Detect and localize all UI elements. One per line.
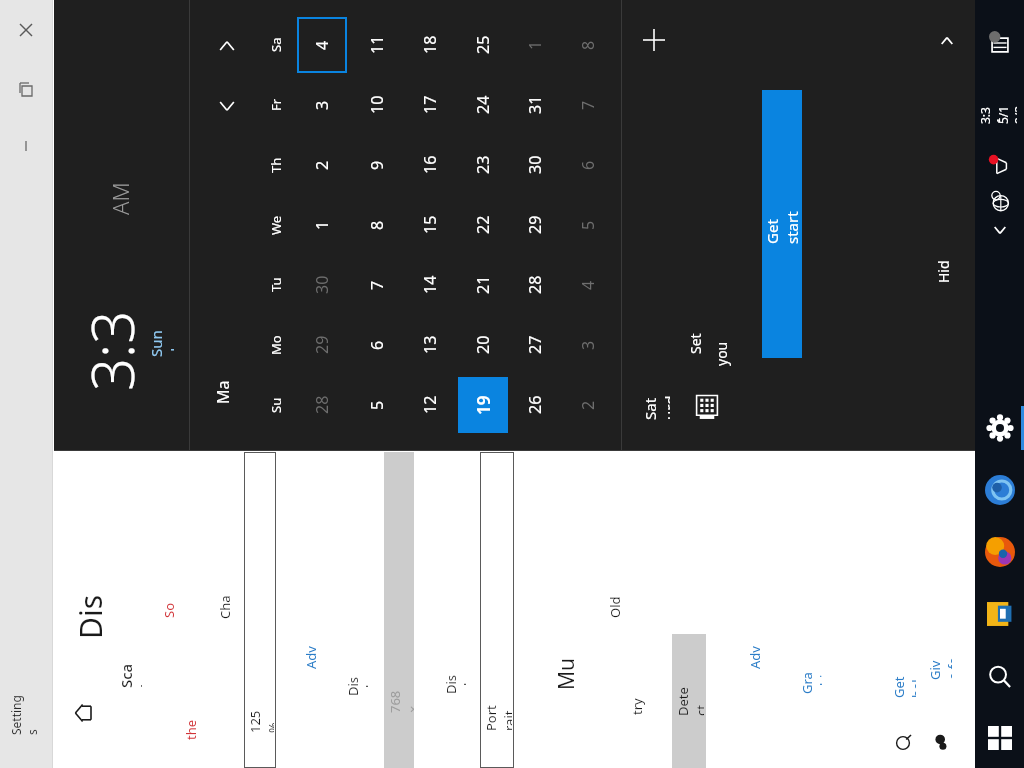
button[interactable]: Hide agenda setup xyxy=(930,24,964,58)
button[interactable]: 29 xyxy=(297,317,347,373)
button[interactable]: Restore xyxy=(6,68,46,112)
button[interactable]: 4 xyxy=(297,17,347,73)
button[interactable]: Graphics settings xyxy=(798,596,822,768)
button[interactable]: 21 xyxy=(458,257,508,313)
button[interactable]: 5 xyxy=(352,377,402,433)
button[interactable]: Home xyxy=(66,690,100,736)
staticText: Advanced scaling settings xyxy=(302,645,326,669)
button[interactable]: 19 xyxy=(458,377,508,433)
button[interactable]: 14 xyxy=(405,257,455,313)
button[interactable]: 9 xyxy=(352,137,402,193)
button[interactable] xyxy=(244,452,276,768)
button[interactable]: 7 xyxy=(563,77,613,133)
button[interactable]: 18 xyxy=(405,17,455,73)
button[interactable]: OneDrive xyxy=(983,146,1017,186)
staticText: 14 xyxy=(419,275,441,294)
staticText: 24 xyxy=(472,95,494,114)
button[interactable]: 26 xyxy=(510,377,560,433)
button[interactable]: Start xyxy=(975,712,1024,764)
button[interactable]: 20 xyxy=(458,317,508,373)
button[interactable]: Get help xyxy=(890,640,916,730)
button[interactable]: Browser xyxy=(975,466,1024,514)
staticText: 3 xyxy=(311,100,333,110)
button[interactable]: 25 xyxy=(458,17,508,73)
staticText: 28 xyxy=(524,275,546,294)
staticText: 16 xyxy=(419,155,441,174)
button[interactable]: 3 xyxy=(297,77,347,133)
button[interactable]: 23 xyxy=(458,137,508,193)
button[interactable]: 3 xyxy=(563,317,613,373)
button[interactable]: 10 xyxy=(352,77,402,133)
staticText: 30 xyxy=(524,155,546,174)
button[interactable]: Hide agenda setup xyxy=(934,180,960,360)
button[interactable]: 16 xyxy=(405,137,455,193)
button[interactable]: Give feedback xyxy=(926,604,952,730)
button[interactable]: Next month xyxy=(206,22,248,70)
staticText: 4 xyxy=(311,40,333,50)
button[interactable]: Add event xyxy=(632,18,676,62)
button[interactable]: 22 xyxy=(458,197,508,253)
button[interactable]: 8 xyxy=(563,17,613,73)
staticText: We xyxy=(267,215,285,235)
button[interactable]: 28 xyxy=(510,257,560,313)
button[interactable]: 1 xyxy=(510,17,560,73)
button[interactable]: Previous month xyxy=(206,82,248,130)
button[interactable]: Search xyxy=(975,652,1024,702)
staticText: 17 xyxy=(419,95,441,114)
button[interactable]: 11 xyxy=(352,17,402,73)
staticText: 23 xyxy=(472,155,494,174)
button[interactable]: Network xyxy=(983,182,1017,222)
button[interactable]: 1 xyxy=(297,197,347,253)
button[interactable]: Firefox xyxy=(975,528,1024,576)
button[interactable]: Notifications xyxy=(981,18,1019,68)
button[interactable]: Advanced scaling settings xyxy=(302,546,326,768)
button[interactable]: Give feedback xyxy=(926,724,956,762)
button[interactable]: Advanced display settings xyxy=(746,546,770,768)
button[interactable]: 8 xyxy=(352,197,402,253)
button[interactable]: 6 xyxy=(352,317,402,373)
staticText: 5 xyxy=(366,400,388,410)
button[interactable]: 6 xyxy=(563,137,613,193)
staticText: May 2024 xyxy=(212,374,242,404)
button[interactable]: Get help xyxy=(888,724,918,762)
button[interactable]: 31 xyxy=(510,77,560,133)
staticText: Get help xyxy=(890,672,916,698)
staticText: 5 xyxy=(577,220,599,230)
button[interactable]: May 2024 xyxy=(212,330,242,448)
button[interactable]: 24 xyxy=(458,77,508,133)
staticText: 125% xyxy=(246,705,274,733)
button[interactable]: 30 xyxy=(297,257,347,313)
button[interactable]: Get started xyxy=(762,90,802,358)
staticText: 2 xyxy=(311,160,333,170)
button[interactable]: 5/19/2024 xyxy=(995,66,1017,160)
staticText: 26 xyxy=(524,395,546,414)
button[interactable]: 7 xyxy=(352,257,402,313)
staticText: Older displays might not always connect … xyxy=(606,596,628,618)
button[interactable] xyxy=(480,452,514,768)
staticText: 7 xyxy=(577,100,599,110)
button[interactable]: Store xyxy=(975,590,1024,638)
staticText: 30 xyxy=(311,275,333,294)
button[interactable]: 2 xyxy=(297,137,347,193)
button[interactable]: 13 xyxy=(405,317,455,373)
button[interactable] xyxy=(672,634,706,768)
button[interactable]: 27 xyxy=(510,317,560,373)
staticText: you need to be xyxy=(712,340,738,366)
button[interactable]: 17 xyxy=(405,77,455,133)
button[interactable]: 4 xyxy=(563,257,613,313)
button[interactable]: 3:31 AM xyxy=(977,70,999,156)
button[interactable]: 5 xyxy=(563,197,613,253)
button[interactable]: Show hidden icons xyxy=(983,212,1017,248)
button[interactable]: Close xyxy=(6,8,46,52)
button[interactable]: 2 xyxy=(563,377,613,433)
button[interactable]: 30 xyxy=(510,137,560,193)
button[interactable]: 28 xyxy=(297,377,347,433)
staticText: Display orientation xyxy=(442,670,466,694)
button[interactable]: Minimize xyxy=(6,126,46,166)
button[interactable]: Sunday, May 19, 2024 xyxy=(146,236,174,450)
button[interactable] xyxy=(384,452,414,768)
button[interactable]: 15 xyxy=(405,197,455,253)
button[interactable]: 29 xyxy=(510,197,560,253)
button[interactable]: Settings xyxy=(975,404,1024,452)
button[interactable]: 12 xyxy=(405,377,455,433)
